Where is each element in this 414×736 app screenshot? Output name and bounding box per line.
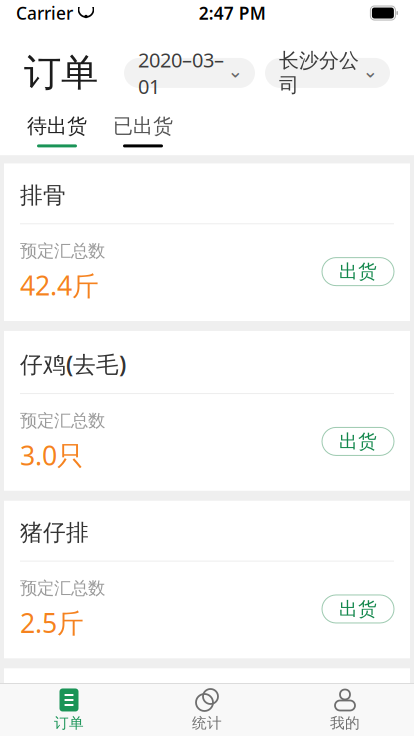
staticText: 2020–03–01 [138, 46, 224, 99]
staticText: Carrier [16, 1, 73, 24]
staticText: 我的 [330, 714, 360, 732]
staticText: 2.5斤 [20, 605, 84, 640]
staticText: 订单 [24, 50, 98, 96]
staticText: 仔鸡(去毛) [20, 349, 126, 379]
staticText: ⌄ [362, 60, 378, 81]
staticText: 出货 [339, 430, 377, 453]
button[interactable]: 出货 [322, 258, 394, 286]
staticText: 猪心 [20, 686, 66, 714]
staticText: 42.4斤 [20, 268, 99, 303]
button[interactable]: 长沙分公司 [265, 58, 390, 88]
button[interactable]: 我的 [276, 682, 414, 736]
staticText: 预定汇总数 [20, 578, 105, 599]
staticText: 预定汇总数 [20, 410, 105, 431]
staticText: 出货 [339, 597, 377, 620]
staticText: ⌄ [227, 60, 243, 81]
staticText: 出货 [339, 260, 377, 283]
button[interactable]: 统计 [138, 682, 276, 736]
staticText: 猪仔排 [20, 519, 89, 547]
staticText: 3.0只 [20, 437, 84, 473]
staticText: 预定汇总数 [20, 240, 105, 262]
staticText: 2:47 PM [199, 1, 266, 24]
button[interactable]: 待出货 [14, 114, 100, 147]
staticText: 待出货 [27, 114, 87, 138]
staticText: 长沙分公司 [279, 48, 359, 97]
staticText: 统计 [192, 714, 222, 732]
staticText: 排骨 [20, 181, 66, 209]
staticText: 已出货 [113, 114, 173, 138]
button[interactable]: 出货 [322, 595, 394, 623]
button[interactable]: 2020–03–01 [124, 58, 255, 88]
button[interactable]: 订单 [0, 682, 138, 736]
button[interactable]: 出货 [322, 427, 394, 455]
staticText: 订单 [54, 714, 84, 732]
button[interactable]: 已出货 [100, 114, 186, 147]
